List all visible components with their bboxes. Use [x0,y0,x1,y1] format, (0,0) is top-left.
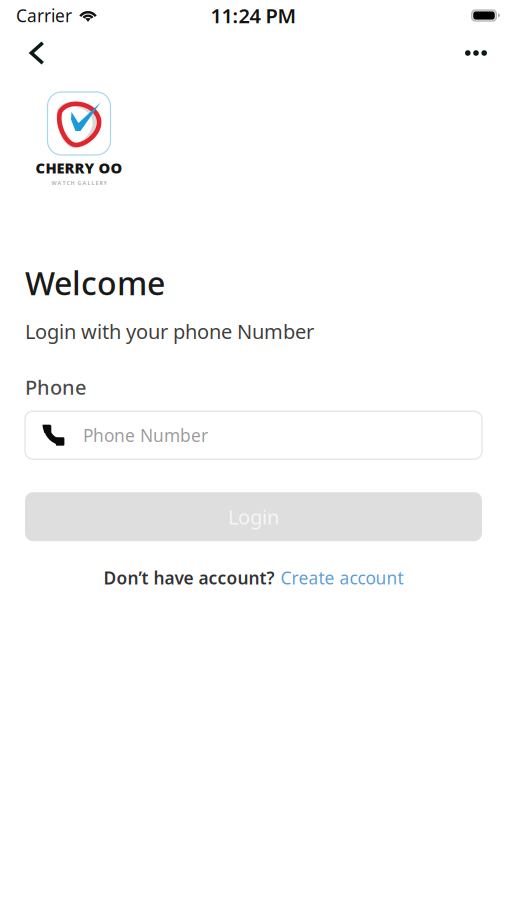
button[interactable]: Phone Number [25,411,482,459]
button[interactable]: Create account [280,566,403,589]
staticText: CHERRY OO [35,158,122,177]
staticText: Carrier [16,4,72,27]
button[interactable]: Back [15,31,59,75]
button[interactable]: More options [454,31,498,75]
staticText: Login [228,503,279,530]
staticText: 11:24 PM [210,2,296,29]
staticText: W A T C H G A L L E R Y [51,179,106,187]
staticText: Welcome [25,262,165,304]
staticText: Phone Number [83,424,208,447]
staticText: Create account [280,566,403,589]
staticText: Login with your phone Number [25,318,314,345]
staticText: Phone [25,374,86,400]
staticText: Don’t have account? [103,566,274,589]
